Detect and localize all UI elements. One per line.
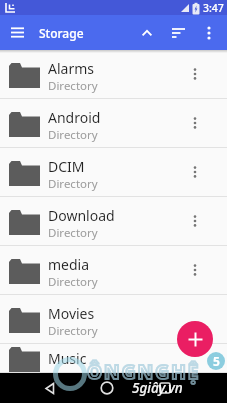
button[interactable] — [175, 197, 215, 245]
staticText: Directory — [48, 127, 98, 143]
staticText: 3:47 — [203, 1, 224, 15]
staticText: media — [48, 255, 90, 274]
staticText: Directory — [48, 225, 98, 241]
button[interactable] — [175, 295, 215, 343]
staticText: Music — [48, 349, 87, 368]
button[interactable] — [194, 15, 224, 50]
button[interactable] — [132, 15, 162, 50]
staticText: 5 — [213, 353, 220, 369]
button[interactable] — [150, 373, 180, 403]
button[interactable] — [175, 246, 215, 294]
button[interactable] — [0, 15, 34, 50]
staticText: Alarms — [48, 59, 94, 78]
button[interactable] — [175, 50, 215, 98]
button[interactable] — [162, 15, 194, 50]
staticText: Directory — [48, 78, 98, 94]
staticText: Movies — [48, 304, 95, 323]
button[interactable] — [175, 99, 215, 147]
staticText: Directory — [48, 368, 98, 372]
staticText: Directory — [48, 274, 98, 290]
button[interactable]: media — [0, 246, 227, 295]
button[interactable] — [175, 344, 215, 372]
staticText: Directory — [48, 176, 98, 192]
staticText: Directory — [48, 323, 98, 339]
button[interactable]: DCIM — [0, 148, 227, 197]
button[interactable]: Download — [0, 197, 227, 246]
button[interactable]: Android — [0, 99, 227, 148]
button[interactable]: Alarms — [0, 50, 227, 99]
button[interactable] — [34, 373, 64, 403]
staticText: Storage — [39, 25, 84, 41]
button[interactable]: Music — [0, 344, 227, 373]
staticText: 5giây.vn — [132, 379, 183, 397]
staticText: Download — [48, 206, 115, 225]
button[interactable]: Movies — [0, 295, 227, 344]
staticText: DCIM — [48, 157, 85, 176]
staticText: ÔNGNGHỆ — [87, 359, 201, 385]
button[interactable] — [175, 148, 215, 196]
button[interactable] — [177, 321, 213, 357]
button[interactable] — [92, 373, 122, 403]
staticText: Android — [48, 108, 101, 127]
